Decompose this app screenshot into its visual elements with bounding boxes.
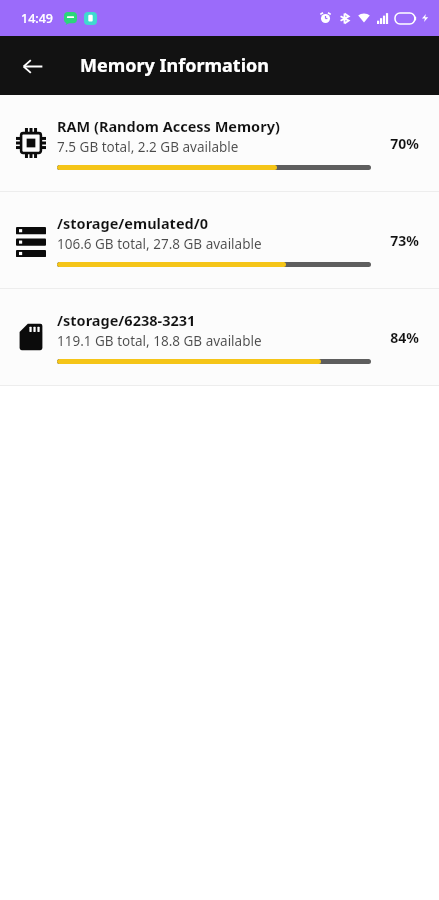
staticText: 106.6 GB total, 27.8 GB available bbox=[57, 235, 262, 253]
staticText: 70% bbox=[390, 134, 419, 153]
staticText: 119.1 GB total, 18.8 GB available bbox=[57, 332, 262, 350]
button[interactable]: RAM (Random Access Memory) bbox=[0, 95, 439, 191]
staticText: /storage/emulated/0 bbox=[57, 213, 209, 233]
staticText: 84% bbox=[390, 328, 419, 347]
staticText: RAM (Random Access Memory) bbox=[57, 116, 280, 136]
button[interactable]: /storage/6238-3231 bbox=[0, 289, 439, 385]
staticText: 73% bbox=[390, 231, 419, 250]
staticText: /storage/6238-3231 bbox=[57, 310, 196, 330]
staticText: 7.5 GB total, 2.2 GB available bbox=[57, 138, 239, 156]
button[interactable]: Back bbox=[12, 46, 52, 86]
staticText: 14:49 bbox=[21, 10, 54, 27]
staticText: Memory Information bbox=[80, 53, 269, 78]
button[interactable]: /storage/emulated/0 bbox=[0, 192, 439, 288]
